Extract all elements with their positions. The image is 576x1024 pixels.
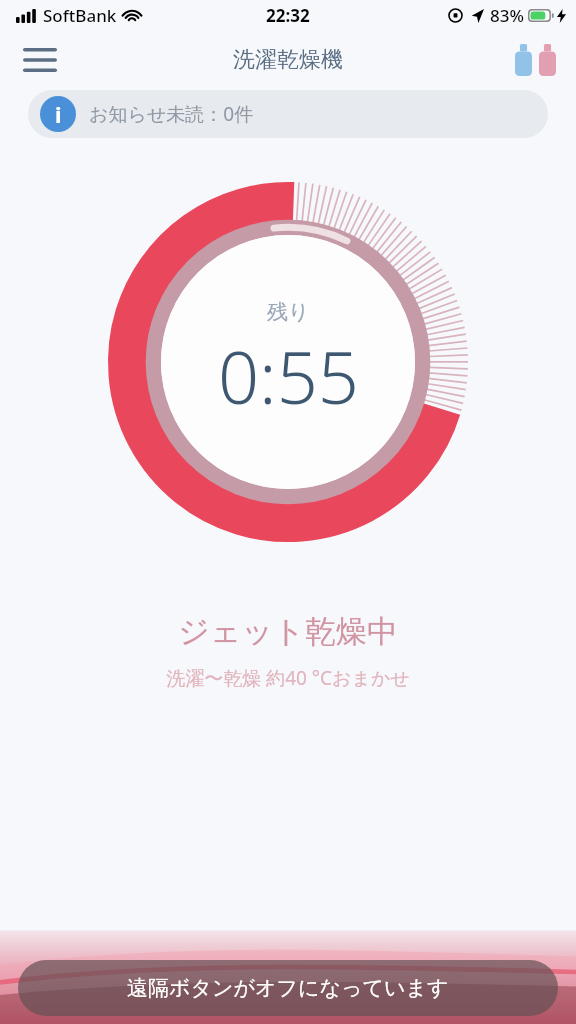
staticText: i: [55, 99, 62, 129]
staticText: 洗濯乾燥機: [233, 46, 343, 74]
staticText: お知らせ未読：0件: [89, 101, 254, 127]
staticText: 83%: [490, 4, 524, 27]
staticText: 洗濯〜乾燥 約40 °Cおまかせ: [0, 665, 576, 691]
staticText: ジェット乾燥中: [0, 612, 576, 651]
button[interactable]: Menu: [12, 32, 68, 88]
button[interactable]: Remaining time 0:55: [108, 182, 468, 542]
staticText: 残り: [267, 299, 310, 325]
staticText: 0:55: [218, 327, 359, 425]
staticText: 遠隔ボタンがオフになっています: [127, 975, 449, 1001]
staticText: 22:32: [266, 4, 310, 27]
staticText: SoftBank: [43, 4, 117, 27]
button[interactable]: i: [28, 90, 548, 138]
button[interactable]: Detergent levels: [509, 38, 562, 82]
button[interactable]: 遠隔ボタンがオフになっています: [18, 960, 558, 1016]
